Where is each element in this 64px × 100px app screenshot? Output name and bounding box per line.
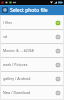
staticText: gallery / Android bbox=[3, 76, 53, 81]
button[interactable]: work / Pictures bbox=[1, 58, 63, 71]
staticText: Movies & ... #2368 bbox=[3, 48, 53, 53]
staticText: New / Download bbox=[3, 90, 53, 95]
staticText: sd bbox=[3, 34, 53, 39]
button[interactable]: New / Download bbox=[1, 86, 63, 99]
staticText: / files bbox=[3, 20, 53, 25]
button[interactable]: Movies & ... #2368 bbox=[1, 44, 63, 57]
button[interactable]: sd bbox=[1, 30, 63, 43]
staticText: work / Pictures bbox=[3, 62, 53, 67]
button[interactable]: / files bbox=[1, 16, 63, 29]
button[interactable]: gallery / Android bbox=[1, 72, 63, 85]
button[interactable]: App icon bbox=[2, 7, 8, 13]
staticText: Select photo file bbox=[10, 7, 48, 14]
